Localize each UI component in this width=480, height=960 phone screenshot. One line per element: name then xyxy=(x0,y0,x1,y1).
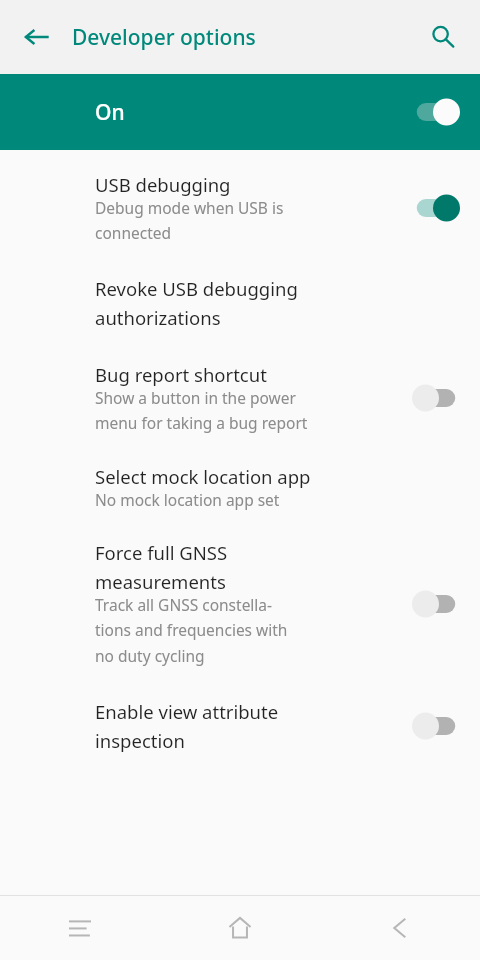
staticText: Track all GNSS constella- tions and freq… xyxy=(95,594,288,667)
button[interactable]: Bug report shortcut xyxy=(0,338,480,440)
staticText: Revoke USB debugging authorizations xyxy=(95,276,298,330)
button[interactable]: Recent apps xyxy=(52,900,108,956)
staticText: Developer options xyxy=(72,23,420,52)
staticText: Enable view attribute inspection xyxy=(95,699,279,753)
button[interactable]: Search xyxy=(420,14,466,60)
staticText: Force full GNSS measurements xyxy=(95,540,228,594)
button[interactable]: Force full GNSS measurements xyxy=(0,516,480,673)
button[interactable]: On xyxy=(0,74,480,150)
button[interactable]: Back xyxy=(14,14,60,60)
staticText: Bug report shortcut xyxy=(95,362,267,387)
staticText: USB debugging xyxy=(95,172,231,197)
staticText: Show a button in the power menu for taki… xyxy=(95,387,308,434)
staticText: On xyxy=(95,98,392,127)
staticText: Debug mode when USB is connected xyxy=(95,197,284,244)
button[interactable]: USB debugging xyxy=(0,150,480,250)
button[interactable]: Revoke USB debugging authorizations xyxy=(0,250,480,338)
button[interactable]: Enable view attribute inspection xyxy=(0,673,480,761)
button[interactable]: Select mock location app xyxy=(0,440,480,516)
button[interactable]: Back xyxy=(372,900,428,956)
staticText: No mock location app set xyxy=(95,489,280,510)
staticText: Select mock location app xyxy=(95,464,311,489)
button[interactable]: Home xyxy=(212,900,268,956)
